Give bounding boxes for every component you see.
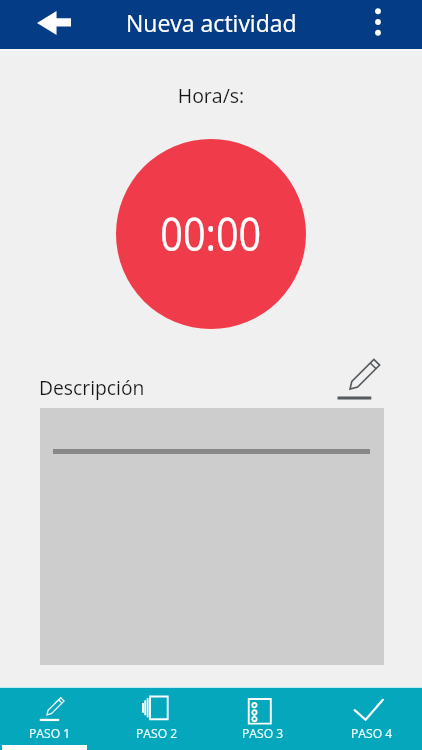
staticText: PASO 3	[242, 725, 284, 742]
button[interactable]: PASO 1	[0, 687, 105, 750]
button[interactable]: PASO 2	[105, 687, 210, 750]
button[interactable]: Edit description	[331, 353, 383, 405]
staticText: PASO 1	[29, 725, 71, 742]
button[interactable]: 00:00	[116, 139, 306, 329]
staticText: Nueva actividad	[126, 7, 297, 38]
button[interactable]: PASO 3	[210, 687, 316, 750]
button[interactable]: Back	[30, 4, 78, 42]
staticText: PASO 2	[136, 725, 178, 742]
staticText: PASO 4	[351, 725, 393, 742]
button[interactable]: PASO 4	[316, 687, 422, 750]
staticText: Hora/s:	[0, 82, 422, 109]
button[interactable]: More options	[360, 1, 396, 43]
staticText: Descripción	[39, 374, 145, 400]
button[interactable]	[40, 408, 384, 665]
staticText: 00:00	[160, 202, 262, 265]
